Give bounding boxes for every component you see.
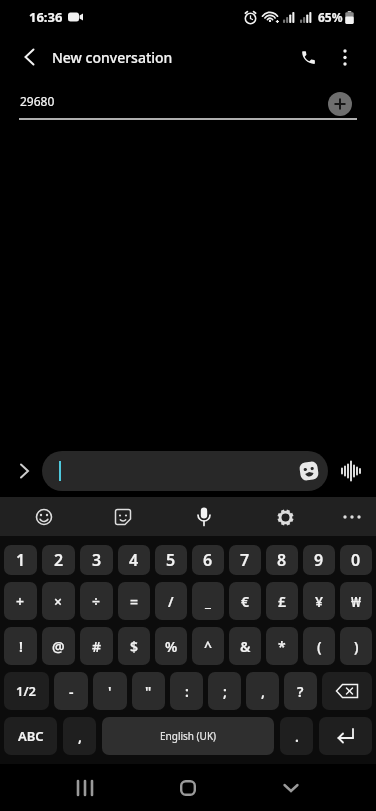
button[interactable] — [68, 771, 102, 805]
button[interactable]: 3 — [80, 545, 113, 575]
button[interactable]: 7 — [229, 545, 261, 575]
button[interactable] — [322, 672, 372, 710]
button[interactable]: % — [155, 627, 187, 665]
button[interactable]: # — [80, 627, 113, 665]
button[interactable]: ; — [208, 672, 241, 710]
button[interactable] — [290, 39, 326, 75]
button[interactable]: , — [246, 672, 279, 710]
button[interactable]: 8 — [266, 545, 298, 575]
button[interactable]: " — [132, 672, 165, 710]
staticText: 2 — [54, 549, 64, 571]
button[interactable] — [330, 42, 360, 72]
button[interactable]: + — [4, 582, 37, 620]
button[interactable]: : — [170, 672, 203, 710]
button[interactable]: ? — [284, 672, 317, 710]
button[interactable] — [42, 451, 328, 491]
button[interactable]: * — [266, 627, 298, 665]
button[interactable]: ABC — [4, 717, 57, 755]
button[interactable]: 4 — [118, 545, 150, 575]
staticText: ? — [297, 682, 304, 701]
staticText: = — [130, 592, 139, 611]
button[interactable]: 5 — [155, 545, 187, 575]
button[interactable]: 1 — [4, 545, 37, 575]
button[interactable]: , — [63, 717, 96, 755]
button[interactable]: = — [118, 582, 150, 620]
button[interactable] — [171, 771, 205, 805]
button[interactable] — [319, 717, 372, 755]
button[interactable]: ¥ — [303, 582, 335, 620]
staticText: ABC — [18, 727, 44, 745]
button[interactable]: 0 — [340, 545, 372, 575]
button[interactable]: & — [229, 627, 261, 665]
staticText: - — [69, 682, 74, 701]
button[interactable] — [337, 502, 367, 532]
staticText: % — [165, 637, 178, 656]
button[interactable] — [336, 456, 366, 486]
staticText: " — [145, 682, 152, 701]
button[interactable] — [14, 41, 46, 73]
staticText: 29680 — [20, 93, 55, 109]
button[interactable] — [189, 502, 219, 532]
button[interactable]: ^ — [192, 627, 224, 665]
button[interactable]: ) — [340, 627, 372, 665]
staticText: : — [185, 682, 189, 701]
button[interactable]: - — [54, 672, 88, 710]
button[interactable]: 1/2 — [4, 672, 49, 710]
staticText: ^ — [204, 637, 213, 656]
staticText: New conversation — [52, 48, 173, 67]
button[interactable] — [328, 92, 352, 116]
button[interactable]: 29680 — [0, 80, 376, 121]
staticText: English (UK) — [160, 729, 217, 743]
staticText: / — [168, 592, 174, 611]
button[interactable]: ! — [4, 627, 37, 665]
staticText: & — [240, 637, 251, 656]
staticText: , — [78, 727, 82, 746]
button[interactable] — [108, 502, 138, 532]
button[interactable]: 9 — [303, 545, 335, 575]
button[interactable]: $ — [118, 627, 150, 665]
staticText: 6 — [203, 549, 213, 571]
staticText: 4 — [129, 549, 139, 571]
staticText: 1/2 — [16, 682, 37, 700]
button[interactable]: . — [280, 717, 313, 755]
staticText: 9 — [314, 549, 324, 571]
staticText: ' — [108, 682, 112, 701]
staticText: 5 — [166, 549, 176, 571]
staticText: 65% — [318, 9, 343, 25]
button[interactable] — [270, 502, 300, 532]
button[interactable]: € — [229, 582, 261, 620]
button[interactable]: / — [155, 582, 187, 620]
button[interactable]: £ — [266, 582, 298, 620]
staticText: ! — [19, 637, 23, 656]
staticText: ÷ — [92, 592, 101, 611]
staticText: + — [16, 592, 25, 611]
button[interactable]: × — [42, 582, 75, 620]
button[interactable]: _ — [192, 582, 224, 620]
staticText: ) — [354, 637, 359, 656]
button[interactable]: ₩ — [340, 582, 372, 620]
button[interactable]: English (UK) — [102, 717, 274, 755]
staticText: £ — [278, 592, 287, 611]
staticText: . — [295, 727, 299, 746]
staticText: , — [261, 682, 265, 701]
staticText: 8 — [277, 549, 287, 571]
button[interactable]: ÷ — [80, 582, 113, 620]
button[interactable]: ( — [303, 627, 335, 665]
staticText: * — [278, 637, 286, 656]
button[interactable]: @ — [42, 627, 75, 665]
staticText: $ — [130, 637, 139, 656]
button[interactable]: ' — [93, 672, 127, 710]
staticText: € — [241, 592, 250, 611]
button[interactable] — [10, 457, 38, 485]
button[interactable]: 6 — [192, 545, 224, 575]
staticText: @ — [52, 637, 65, 656]
staticText: # — [92, 637, 102, 656]
staticText: × — [54, 592, 63, 611]
staticText: _ — [205, 592, 211, 611]
button[interactable] — [296, 458, 322, 484]
button[interactable] — [274, 771, 308, 805]
staticText: 1 — [16, 549, 26, 571]
button[interactable]: 2 — [42, 545, 75, 575]
button[interactable] — [29, 502, 59, 532]
staticText: ₩ — [351, 592, 361, 611]
